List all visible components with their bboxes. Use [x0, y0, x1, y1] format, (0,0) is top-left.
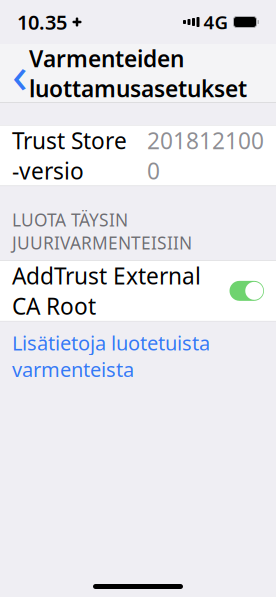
staticText: ‹ — [12, 40, 28, 107]
staticText: LUOTA TÄYSIN JUURIVARMENTEISIIN — [12, 208, 192, 254]
staticText: AddTrust External CA Root — [12, 261, 201, 321]
button[interactable]: Lisätietoja luotetuista varmenteista — [0, 321, 276, 390]
staticText: Trust Store -versio — [12, 125, 127, 186]
staticText: 2018121000 — [147, 125, 264, 186]
button[interactable]: AddTrust External CA Root — [0, 261, 276, 321]
staticText: Varmenteiden luottamusasetukset — [29, 43, 247, 104]
staticText: 4G — [203, 10, 228, 34]
staticText: 10.35 — [17, 9, 67, 35]
button[interactable]: Takaisin — [0, 51, 40, 95]
staticText: Lisätietoja luotetuista varmenteista — [12, 329, 210, 382]
button[interactable]: Trust Store -versio — [0, 125, 276, 186]
